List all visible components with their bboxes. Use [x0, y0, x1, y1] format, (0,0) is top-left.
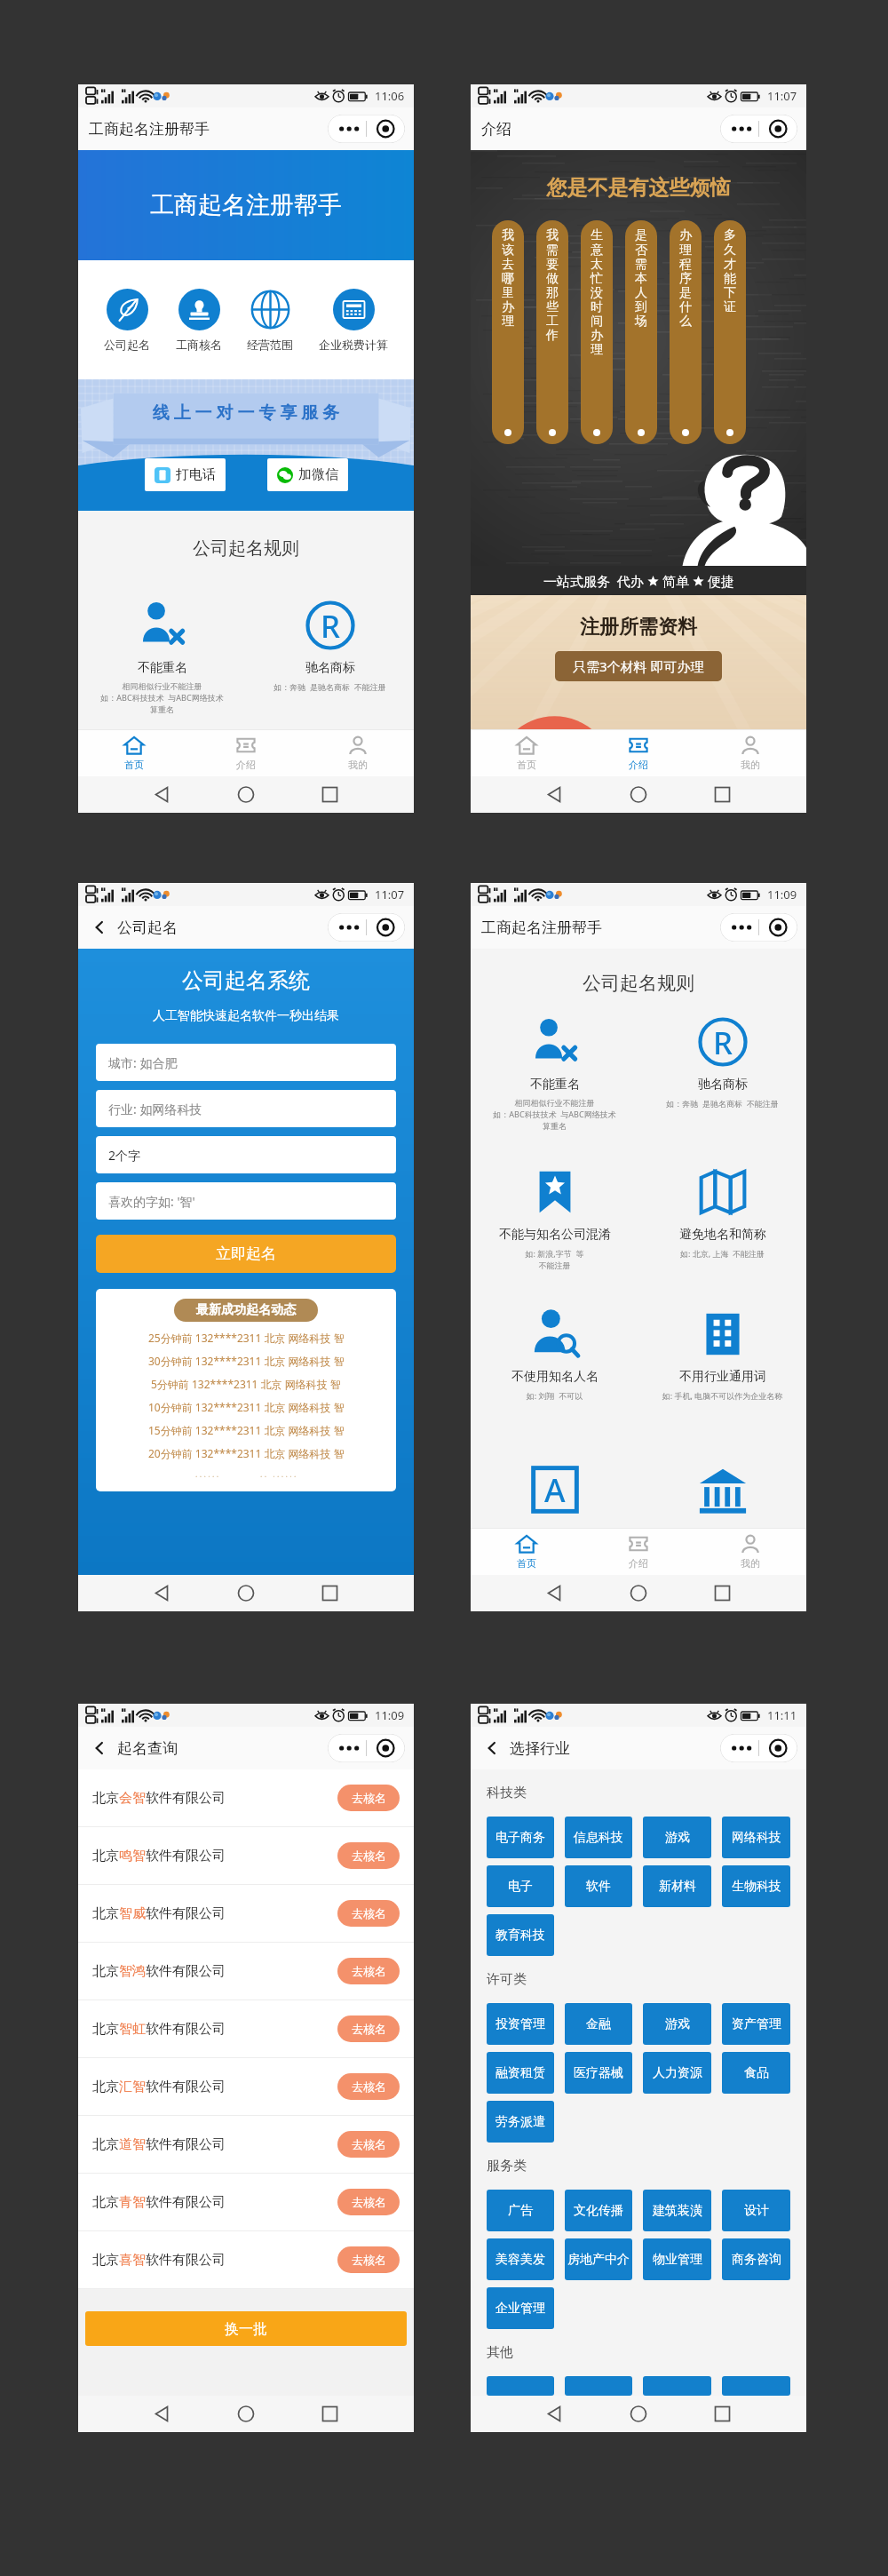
button[interactable]: 生意太忙没时间办理: [581, 220, 613, 444]
button[interactable]: 投资管理: [487, 2003, 554, 2045]
button[interactable]: 办理程序是什么: [670, 220, 702, 444]
button[interactable]: Menu: [720, 913, 797, 942]
button[interactable]: 企业税费计算: [319, 289, 388, 352]
button[interactable]: 去核名: [337, 1900, 400, 1927]
button[interactable]: 打电话: [145, 458, 226, 491]
button[interactable]: 我该去哪里办理: [492, 220, 524, 444]
button[interactable]: 加微信: [267, 458, 348, 491]
button[interactable]: 换一批: [85, 2311, 407, 2346]
button[interactable]: 金融: [565, 2003, 632, 2045]
staticText: 软件有限公司: [146, 2079, 226, 2095]
button[interactable]: 首页: [471, 729, 583, 776]
button[interactable]: 软件: [565, 1865, 632, 1907]
button[interactable]: 人力资源: [643, 2052, 711, 2094]
button[interactable]: [643, 2376, 711, 2396]
button[interactable]: 设计: [722, 2190, 790, 2231]
button[interactable]: 北京: [78, 2231, 414, 2288]
button[interactable]: Back: [89, 917, 110, 938]
button[interactable]: [487, 2376, 554, 2396]
button[interactable]: 北京: [78, 1885, 414, 1942]
button[interactable]: 资产管理: [722, 2003, 790, 2045]
button[interactable]: 介绍: [190, 729, 302, 776]
button[interactable]: Back: [481, 1737, 503, 1759]
button[interactable]: 不使用知名人名: [471, 1308, 638, 1401]
button[interactable]: 喜欢的字如: '智': [96, 1182, 396, 1220]
button[interactable]: 文化传播: [565, 2190, 632, 2231]
button[interactable]: 游戏: [643, 1817, 711, 1858]
button[interactable]: Menu: [328, 115, 405, 143]
button[interactable]: 公司起名: [104, 289, 150, 352]
button[interactable]: 去核名: [337, 2246, 400, 2273]
button[interactable]: 介绍: [583, 1528, 694, 1575]
button[interactable]: 经营范围: [247, 289, 293, 352]
button[interactable]: 去核名: [337, 1785, 400, 1811]
button[interactable]: 2个字: [96, 1136, 396, 1173]
button[interactable]: Menu: [328, 1734, 405, 1762]
button[interactable]: 去核名: [337, 1958, 400, 1984]
button[interactable]: 房地产中介: [565, 2238, 632, 2280]
button[interactable]: 不能与知名公司混淆: [471, 1166, 638, 1270]
button[interactable]: 劳务派遣: [487, 2101, 554, 2143]
button[interactable]: 机构规则: [638, 1464, 806, 1515]
button[interactable]: 不能重名: [471, 1016, 638, 1131]
button[interactable]: Menu: [720, 115, 797, 143]
button[interactable]: 信息科技: [565, 1817, 632, 1858]
button[interactable]: 工商核名: [176, 289, 222, 352]
button[interactable]: 我的: [302, 729, 414, 776]
button[interactable]: 首页: [471, 1528, 583, 1575]
staticText: 如: 新浪,字节 等 不能注册: [471, 1248, 638, 1270]
button[interactable]: Menu: [328, 913, 405, 942]
button[interactable]: 美容美发: [487, 2238, 554, 2280]
staticText: 如：奔驰 是驰名商标 不能注册: [246, 681, 414, 692]
button[interactable]: 去核名: [337, 2189, 400, 2215]
button[interactable]: R: [638, 1016, 806, 1109]
button[interactable]: 商务咨询: [722, 2238, 790, 2280]
button[interactable]: [565, 2376, 632, 2396]
button[interactable]: 电子: [487, 1865, 554, 1907]
button[interactable]: R: [246, 600, 414, 692]
button[interactable]: 新材料: [643, 1865, 711, 1907]
button[interactable]: 不能重名: [78, 600, 246, 714]
button[interactable]: 是否需本人到场: [625, 220, 657, 444]
button[interactable]: 介绍: [583, 729, 694, 776]
button[interactable]: Menu: [720, 1734, 797, 1762]
button[interactable]: 字母规则: [471, 1464, 638, 1515]
button[interactable]: 北京: [78, 2000, 414, 2057]
button[interactable]: 北京: [78, 2058, 414, 2115]
button[interactable]: 避免地名和简称: [638, 1166, 806, 1259]
button[interactable]: 游戏: [643, 2003, 711, 2045]
button[interactable]: 去核名: [337, 1842, 400, 1869]
button[interactable]: 去核名: [337, 2131, 400, 2158]
button[interactable]: [722, 2376, 790, 2396]
button[interactable]: 去核名: [337, 2015, 400, 2042]
button[interactable]: 我的: [694, 729, 806, 776]
button[interactable]: 多久才能下证: [714, 220, 746, 444]
button[interactable]: 融资租赁: [487, 2052, 554, 2094]
button[interactable]: 广告: [487, 2190, 554, 2231]
button[interactable]: 城市: 如合肥: [96, 1044, 396, 1081]
button[interactable]: 我的: [694, 1528, 806, 1575]
button[interactable]: 立即起名: [96, 1235, 396, 1273]
button[interactable]: 北京: [78, 2174, 414, 2230]
staticText: 不能重名: [530, 1077, 580, 1093]
button[interactable]: 首页: [78, 729, 190, 776]
button[interactable]: 网络科技: [722, 1817, 790, 1858]
button[interactable]: 食品: [722, 2052, 790, 2094]
button[interactable]: 北京: [78, 2116, 414, 2173]
button[interactable]: 北京: [78, 1943, 414, 2000]
button[interactable]: 医疗器械: [565, 2052, 632, 2094]
button[interactable]: 生物科技: [722, 1865, 790, 1907]
button[interactable]: 去核名: [337, 2073, 400, 2100]
button[interactable]: 不用行业通用词: [638, 1308, 806, 1401]
button[interactable]: 建筑装潢: [643, 2190, 711, 2231]
button[interactable]: 北京: [78, 1769, 414, 1826]
button[interactable]: 我需要做那些工作: [536, 220, 568, 444]
button[interactable]: 物业管理: [643, 2238, 711, 2280]
button[interactable]: Back: [89, 1737, 110, 1759]
button[interactable]: 企业管理: [487, 2287, 554, 2329]
button[interactable]: 北京: [78, 1827, 414, 1884]
button[interactable]: 电子商务: [487, 1817, 554, 1858]
staticText: 房地产中介: [567, 2252, 630, 2268]
button[interactable]: 行业: 如网络科技: [96, 1090, 396, 1127]
button[interactable]: 教育科技: [487, 1914, 554, 1956]
